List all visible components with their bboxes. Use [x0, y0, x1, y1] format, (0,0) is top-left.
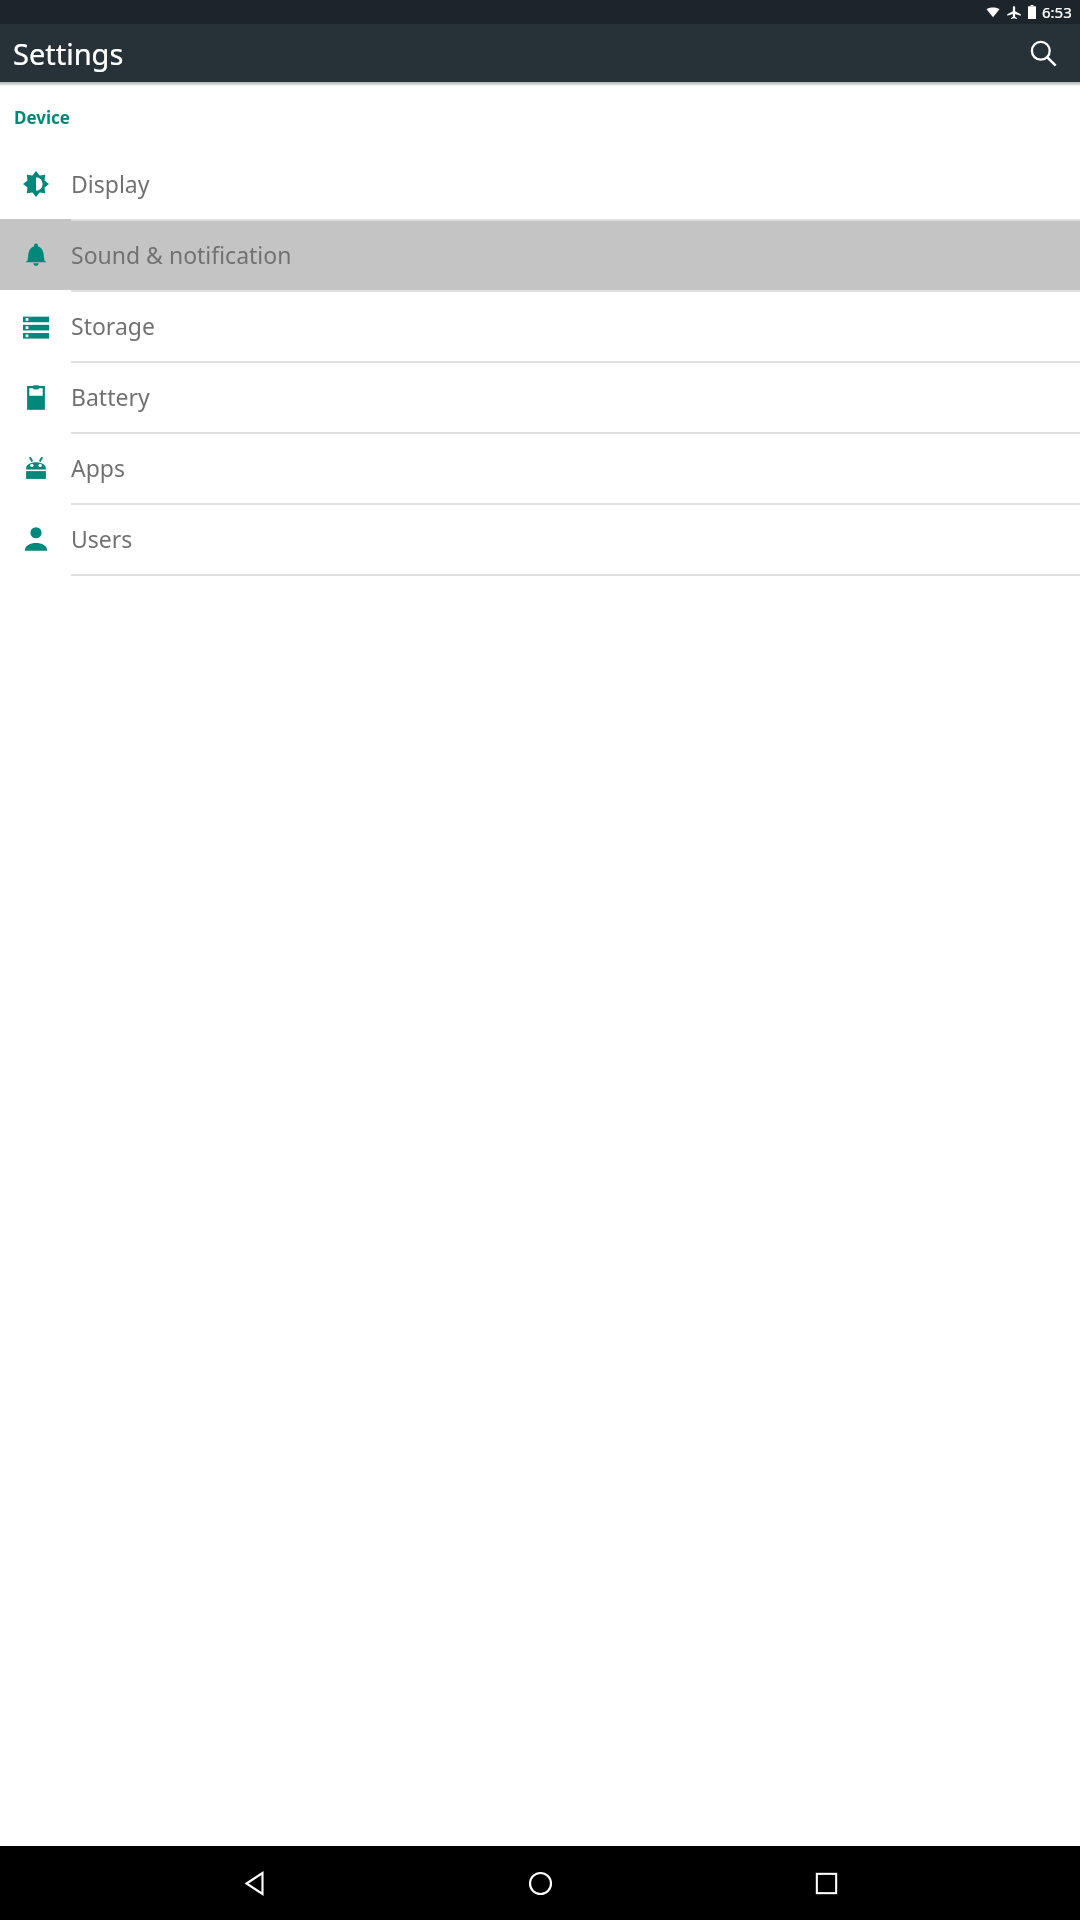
button[interactable]: Storage — [0, 290, 1080, 361]
button[interactable]: Recent apps — [794, 1851, 858, 1915]
staticText: Users — [71, 523, 133, 554]
staticText: Settings — [13, 34, 124, 73]
staticText: Display — [71, 168, 150, 199]
button[interactable]: Display — [0, 148, 1080, 219]
button[interactable]: Sound & notification — [0, 219, 1080, 290]
staticText: Sound & notification — [71, 239, 292, 270]
button[interactable]: Back — [222, 1851, 286, 1915]
staticText: 6:53 — [1042, 2, 1072, 22]
staticText: Storage — [71, 310, 155, 341]
staticText: Device — [14, 106, 70, 129]
staticText: Apps — [71, 452, 126, 483]
staticText: Battery — [71, 381, 150, 412]
button[interactable]: Search — [1020, 30, 1066, 76]
button[interactable]: Home — [508, 1851, 572, 1915]
button[interactable]: Apps — [0, 432, 1080, 503]
button[interactable]: Users — [0, 503, 1080, 574]
button[interactable]: Battery — [0, 361, 1080, 432]
